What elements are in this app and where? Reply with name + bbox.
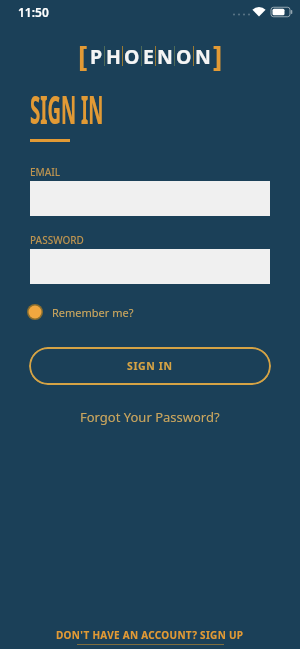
staticText: SIGN IN bbox=[127, 359, 173, 373]
staticText: O bbox=[176, 43, 192, 70]
staticText: P bbox=[90, 43, 103, 70]
staticText: N bbox=[157, 43, 173, 70]
staticText: [ bbox=[78, 37, 88, 75]
staticText: SIGN IN bbox=[30, 81, 103, 135]
button[interactable]: SIGN IN bbox=[29, 347, 271, 385]
staticText: EMAIL bbox=[30, 165, 61, 179]
staticText: 11:50 bbox=[18, 4, 49, 20]
staticText: PASSWORD bbox=[30, 233, 84, 247]
staticText: E bbox=[143, 43, 154, 70]
button[interactable]: Forgot Your Password? bbox=[80, 408, 220, 426]
staticText: H bbox=[106, 43, 121, 70]
staticText: Remember me? bbox=[52, 305, 134, 320]
staticText: DON'T HAVE AN ACCOUNT? SIGN UP bbox=[56, 628, 244, 642]
button[interactable]: DON'T HAVE AN ACCOUNT? SIGN UP bbox=[56, 628, 244, 645]
staticText: O bbox=[124, 43, 140, 70]
staticText: ] bbox=[213, 37, 223, 75]
button[interactable]: Remember me? bbox=[27, 304, 134, 320]
staticText: N bbox=[195, 43, 211, 70]
